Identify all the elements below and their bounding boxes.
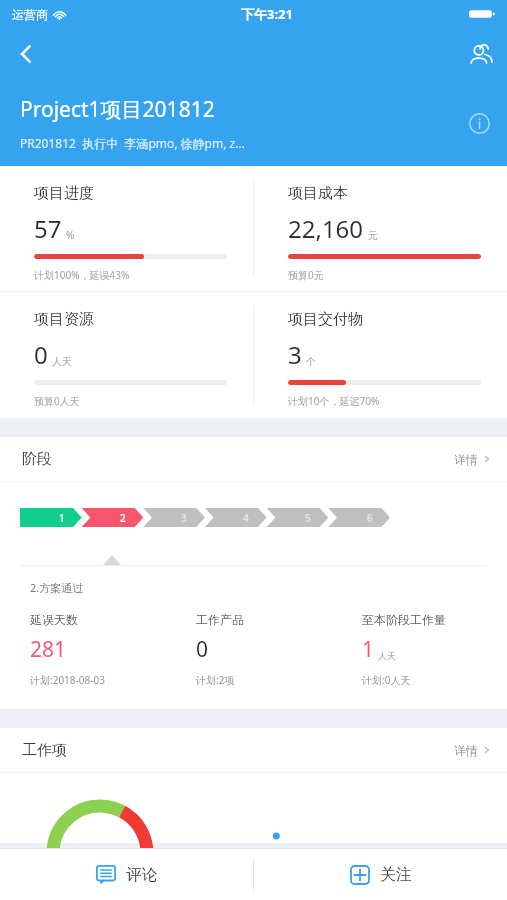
staticText: 预算0元: [288, 268, 324, 282]
staticText: 计划10个，延迟70%: [288, 394, 380, 408]
button[interactable]: 工作产品: [166, 612, 332, 687]
staticText: 人天: [378, 650, 396, 661]
staticText: 3: [181, 511, 187, 525]
staticText: 0: [196, 635, 209, 664]
button[interactable]: 项目进度: [0, 166, 253, 291]
staticText: 0: [34, 338, 48, 371]
staticText: 阶段: [22, 450, 52, 469]
staticText: 2.方案通过: [30, 580, 84, 595]
staticText: %: [66, 228, 75, 242]
staticText: 项目进度: [34, 184, 94, 203]
staticText: PR201812 执行中 李涵pmo, 徐静pm, z...: [20, 135, 245, 151]
staticText: 至本阶段工作量: [362, 612, 446, 627]
staticText: 57: [34, 212, 62, 245]
staticText: 4: [243, 511, 249, 525]
staticText: 3: [288, 338, 302, 371]
staticText: 6: [367, 511, 373, 525]
staticText: 1: [59, 511, 65, 525]
staticText: 22,160: [288, 212, 364, 245]
button[interactable]: 项目成本: [254, 166, 507, 291]
staticText: 项目成本: [288, 184, 348, 203]
staticText: 下午3:21: [241, 5, 293, 23]
staticText: 项目资源: [34, 310, 94, 329]
button[interactable]: 评论: [0, 849, 253, 900]
button[interactable]: 项目交付物: [254, 292, 507, 418]
staticText: 元: [368, 229, 378, 242]
staticText: Project1项目201812: [20, 95, 215, 124]
staticText: 计划:2018-08-03: [30, 673, 105, 687]
button[interactable]: Members: [455, 28, 507, 80]
staticText: 计划100%，延误43%: [34, 268, 130, 282]
staticText: 关注: [380, 865, 412, 885]
staticText: 计划:0人天: [362, 673, 411, 687]
button[interactable]: 详情: [438, 728, 507, 772]
staticText: 详情: [454, 743, 478, 758]
button[interactable]: Info: [451, 95, 507, 151]
staticText: 详情: [454, 452, 478, 467]
button[interactable]: 详情: [438, 437, 507, 481]
staticText: 人天: [52, 355, 72, 368]
staticText: 评论: [126, 865, 158, 885]
staticText: 1: [362, 635, 375, 664]
button[interactable]: Back: [0, 28, 52, 80]
button[interactable]: 关注: [254, 849, 507, 900]
staticText: 运营商: [12, 7, 48, 22]
staticText: 工作项: [22, 741, 67, 760]
staticText: 281: [30, 635, 67, 664]
staticText: 工作产品: [196, 612, 244, 627]
button[interactable]: 项目资源: [0, 292, 253, 418]
staticText: 预算0人天: [34, 394, 80, 408]
button[interactable]: 至本阶段工作量: [332, 612, 507, 687]
staticText: 项目交付物: [288, 310, 363, 329]
staticText: 计划:2项: [196, 673, 235, 687]
staticText: 2: [120, 511, 126, 525]
staticText: 5: [305, 511, 311, 525]
staticText: 延误天数: [30, 612, 78, 627]
staticText: 个: [306, 355, 316, 368]
button[interactable]: 延误天数: [0, 612, 166, 687]
